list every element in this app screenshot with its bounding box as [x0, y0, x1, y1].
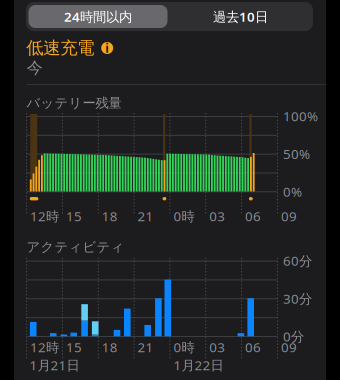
staticText: 03: [209, 338, 225, 356]
staticText: 06: [245, 338, 261, 356]
staticText: 09: [281, 207, 297, 225]
staticText: 100%: [283, 107, 318, 125]
staticText: 24時間以内: [64, 8, 132, 25]
staticText: 18: [102, 207, 118, 225]
staticText: 0%: [283, 183, 302, 200]
staticText: 60分: [283, 252, 312, 269]
staticText: 15: [66, 338, 82, 356]
staticText: 12時: [30, 207, 59, 225]
staticText: 03: [209, 207, 225, 225]
staticText: バッテリー残量: [27, 95, 122, 111]
staticText: 21: [138, 207, 154, 225]
staticText: 18: [102, 338, 118, 356]
staticText: 15: [66, 207, 82, 225]
staticText: 09: [281, 338, 297, 356]
staticText: アクティビティ: [27, 239, 125, 255]
staticText: 0時: [173, 338, 194, 356]
button[interactable]: 過去10日: [171, 5, 310, 28]
staticText: 1月22日: [173, 356, 223, 374]
staticText: 1月21日: [30, 356, 80, 374]
staticText: 0時: [173, 207, 194, 225]
staticText: 過去10日: [213, 8, 268, 25]
staticText: i: [105, 40, 109, 56]
button[interactable]: 低速充電: [26, 37, 113, 59]
staticText: 12時: [30, 338, 59, 356]
staticText: 0分: [283, 327, 304, 345]
staticText: 今: [27, 58, 43, 78]
staticText: 30分: [283, 290, 312, 307]
staticText: 50%: [283, 145, 310, 163]
button[interactable]: 24時間以内: [28, 5, 167, 28]
staticText: 21: [138, 338, 154, 356]
staticText: 低速充電: [26, 37, 94, 59]
staticText: 06: [245, 207, 261, 225]
